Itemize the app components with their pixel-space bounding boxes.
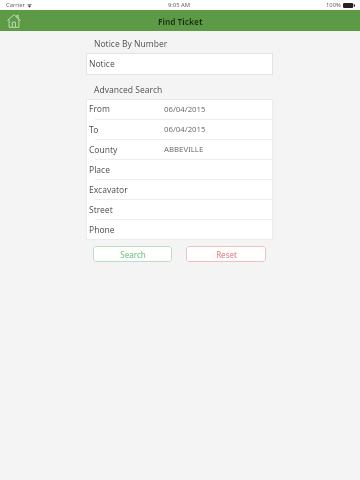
staticText: ABBEVILLE: [164, 144, 204, 155]
staticText: Phone: [89, 224, 164, 236]
staticText: Advanced Search: [94, 84, 163, 96]
staticText: Search: [120, 249, 146, 260]
staticText: 06/04/2015: [164, 104, 206, 115]
button[interactable]: Street: [86, 200, 273, 220]
staticText: Notice: [89, 58, 115, 70]
staticText: To: [89, 124, 164, 136]
staticText: Notice By Number: [94, 38, 168, 50]
staticText: Find Ticket: [158, 16, 203, 27]
button[interactable]: Reset: [186, 246, 266, 262]
staticText: Place: [89, 164, 164, 176]
button[interactable]: Home: [6, 13, 22, 29]
button[interactable]: Notice: [86, 53, 273, 75]
button[interactable]: Place: [86, 160, 273, 180]
staticText: Reset: [216, 249, 237, 260]
staticText: 100%: [326, 1, 341, 9]
staticText: County: [89, 144, 164, 156]
button[interactable]: From: [86, 99, 273, 120]
button[interactable]: To: [86, 120, 273, 140]
button[interactable]: County: [86, 140, 273, 160]
staticText: Street: [89, 204, 164, 216]
button[interactable]: Search: [93, 246, 172, 262]
staticText: Carrier: [6, 1, 25, 9]
staticText: From: [89, 103, 164, 115]
button[interactable]: Phone: [86, 220, 273, 240]
staticText: Excavator: [89, 184, 164, 196]
staticText: 06/04/2015: [164, 124, 206, 135]
button[interactable]: Excavator: [86, 180, 273, 200]
staticText: 9:05 AM: [168, 1, 190, 9]
